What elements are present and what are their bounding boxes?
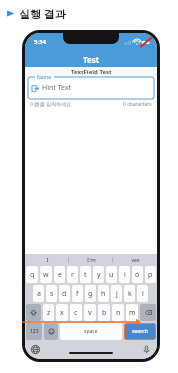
button[interactable]: q [26, 266, 38, 283]
staticText: y [97, 270, 101, 280]
staticText: r [71, 270, 74, 280]
button[interactable]: search [125, 324, 155, 339]
staticText: h [101, 289, 106, 299]
button[interactable]: o [132, 266, 143, 283]
staticText: s [50, 289, 54, 299]
button[interactable]: l [137, 285, 148, 302]
staticText: n [116, 308, 121, 318]
staticText: c [74, 308, 78, 318]
staticText: i [124, 270, 126, 280]
staticText: z [47, 308, 51, 318]
staticText: t [84, 270, 87, 280]
staticText: a [37, 289, 41, 299]
button[interactable]: Change keyboard language [31, 345, 40, 354]
staticText: k [128, 289, 132, 299]
staticText: q [30, 270, 35, 280]
staticText: b [102, 308, 107, 318]
button[interactable]: a [33, 285, 44, 302]
button[interactable]: r [67, 266, 78, 283]
button[interactable]: x [56, 304, 68, 321]
button[interactable]: s [46, 285, 57, 302]
button[interactable]: space [60, 323, 122, 340]
staticText: l [142, 289, 144, 299]
staticText: o [135, 270, 140, 280]
staticText: we [131, 256, 140, 264]
button[interactable]: Name [28, 77, 154, 99]
button[interactable]: v [84, 304, 96, 321]
staticText: e [58, 270, 62, 280]
button[interactable]: c [70, 304, 82, 321]
button[interactable]: Voice input [142, 345, 151, 354]
button[interactable]: e [54, 266, 65, 283]
button[interactable]: we [113, 254, 157, 266]
staticText: 0 characters [123, 101, 152, 108]
staticText: j [116, 289, 118, 299]
button[interactable]: Backspace [140, 304, 156, 321]
button[interactable]: f [72, 285, 83, 302]
staticText: x [60, 308, 64, 318]
button[interactable]: Shift [26, 304, 41, 321]
staticText: p [148, 270, 153, 280]
button[interactable]: m [126, 304, 138, 321]
staticText: search [132, 328, 148, 335]
staticText: f [76, 289, 79, 299]
button[interactable]: y [93, 266, 104, 283]
staticText: Hint Text [42, 83, 72, 93]
button[interactable]: n [112, 304, 124, 321]
button[interactable]: k [124, 285, 135, 302]
button[interactable]: w [40, 266, 52, 283]
staticText: v [88, 308, 92, 318]
button[interactable]: h [98, 285, 109, 302]
button[interactable]: d [59, 285, 70, 302]
button[interactable]: I [25, 254, 69, 266]
button[interactable]: 123 [26, 323, 42, 340]
staticText: I'm [87, 256, 96, 264]
staticText: Name [37, 74, 52, 81]
staticText: TextField Test [71, 68, 112, 76]
button[interactable]: p [145, 266, 156, 283]
staticText: 123 [30, 328, 39, 335]
staticText: I [46, 256, 49, 264]
staticText: g [88, 289, 93, 299]
button[interactable]: j [111, 285, 122, 302]
staticText: d [62, 289, 67, 299]
staticText: 실행 결과 [19, 6, 66, 21]
button[interactable]: I'm [69, 254, 113, 266]
button[interactable]: u [106, 266, 117, 283]
staticText: w [43, 270, 49, 280]
staticText: u [109, 270, 114, 280]
button[interactable]: z [43, 304, 54, 321]
button[interactable]: g [85, 285, 96, 302]
staticText: 이름을 입력하세요. [30, 101, 73, 108]
button[interactable]: i [119, 266, 130, 283]
button[interactable]: b [98, 304, 110, 321]
staticText: 5:34 [34, 38, 46, 46]
staticText: Test [83, 54, 100, 65]
staticText: m [129, 308, 136, 318]
staticText: space [84, 328, 98, 335]
button[interactable]: Emoji [44, 323, 58, 340]
button[interactable]: t [80, 266, 91, 283]
